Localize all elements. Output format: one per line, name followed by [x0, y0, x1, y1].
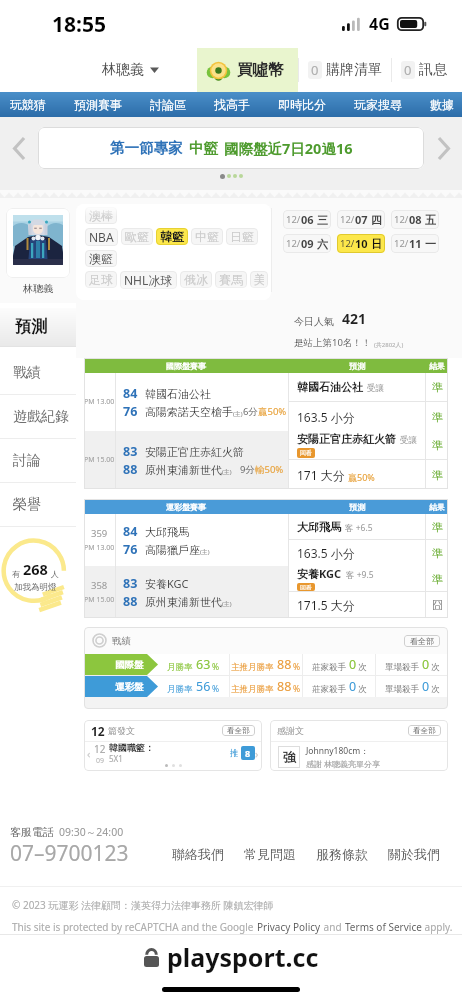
button[interactable]: 美足: [250, 271, 268, 288]
staticText: ›: [255, 746, 259, 761]
staticText: 安養KGC: [297, 566, 342, 581]
staticText: Johnny180cm：: [306, 745, 369, 757]
button[interactable]: Previous: [0, 127, 38, 169]
staticText: 國際盤近7日20過16: [224, 138, 353, 158]
staticText: 關於我們: [388, 846, 440, 862]
button[interactable]: 澳籃: [85, 250, 117, 267]
button[interactable]: 林聰義: [102, 52, 159, 88]
staticText: 找高手: [214, 97, 250, 112]
staticText: 76: [123, 403, 138, 420]
staticText: 12: [91, 723, 105, 739]
button[interactable]: 聯絡我們: [162, 840, 234, 868]
button[interactable]: 戰績: [0, 351, 76, 394]
button[interactable]: [6, 208, 70, 278]
button[interactable]: 澳棒: [85, 207, 117, 224]
staticText: %: [293, 661, 301, 673]
staticText: 準: [432, 468, 443, 482]
staticText: 安陽正官庄赤紅火箭: [297, 432, 396, 446]
button[interactable]: 常見問題: [234, 840, 306, 868]
staticText: 結果: [429, 502, 445, 512]
button[interactable]: 賽馬: [215, 271, 247, 288]
button[interactable]: 遊戲紀錄: [0, 395, 76, 438]
button[interactable]: 0: [299, 48, 391, 92]
staticText: 9分: [240, 463, 255, 476]
button[interactable]: 討論: [0, 439, 76, 482]
staticText: 莊家殺手: [312, 662, 346, 673]
button[interactable]: NHL冰球: [120, 271, 177, 289]
staticText: 268: [23, 559, 48, 579]
button[interactable]: 中籃: [191, 228, 223, 245]
staticText: 88: [123, 593, 138, 610]
staticText: 84: [123, 523, 138, 540]
button[interactable]: 數據: [426, 92, 458, 117]
button[interactable]: 玩家搜尋: [350, 92, 406, 117]
button[interactable]: 12/: [283, 234, 331, 253]
button[interactable]: 關於我們: [378, 840, 450, 868]
staticText: 討論: [13, 452, 41, 470]
staticText: 09: [96, 756, 105, 764]
staticText: 12/: [340, 213, 355, 226]
button[interactable]: 討論區: [146, 92, 190, 117]
button[interactable]: NBA: [85, 228, 118, 246]
button[interactable]: 預測: [0, 308, 76, 346]
button[interactable]: 看全部: [404, 635, 440, 647]
staticText: 囧: [432, 598, 443, 612]
button[interactable]: 12/: [391, 234, 439, 253]
staticText: 莊家殺手: [312, 684, 346, 695]
staticText: 單場殺手: [385, 684, 419, 695]
staticText: 贏50%: [348, 471, 375, 483]
button[interactable]: 找高手: [210, 92, 254, 117]
staticText: 四: [371, 213, 382, 227]
staticText: 原州東浦新世代: [145, 595, 222, 609]
button[interactable]: 預測賽事: [70, 92, 126, 117]
button[interactable]: 即時比分: [274, 92, 330, 117]
staticText: 韓國職籃：: [109, 742, 154, 753]
staticText: 原州東浦新世代: [145, 463, 222, 477]
button[interactable]: 12/: [337, 210, 385, 229]
button[interactable]: 12/: [391, 210, 439, 229]
staticText: 08: [409, 212, 422, 227]
button[interactable]: 玩競猜: [6, 92, 50, 117]
staticText: 56: [196, 678, 211, 695]
staticText: (主): [222, 600, 232, 608]
button[interactable]: playsport.cc: [0, 935, 462, 979]
button[interactable]: 歐籃: [121, 228, 153, 245]
staticText: 回看: [300, 449, 312, 457]
staticText: 準: [432, 410, 443, 424]
button[interactable]: 0: [392, 48, 456, 92]
button[interactable]: Next: [424, 127, 462, 169]
button[interactable]: 足球: [85, 271, 117, 288]
staticText: (主): [200, 548, 210, 556]
button[interactable]: 看全部: [408, 725, 441, 736]
staticText: 07: [355, 212, 368, 227]
button[interactable]: 日籃: [226, 228, 258, 245]
button[interactable]: 12/: [337, 234, 385, 253]
button[interactable]: 服務條款: [306, 840, 378, 868]
staticText: 準: [432, 546, 443, 560]
staticText: 澳籃: [89, 251, 113, 266]
staticText: 推: [230, 748, 239, 759]
staticText: 戰績: [13, 364, 41, 382]
staticText: 月勝率: [167, 662, 193, 673]
button[interactable]: 韓籃: [156, 228, 188, 245]
staticText: 玩競猜: [10, 97, 46, 112]
button[interactable]: 12/: [283, 210, 331, 229]
staticText: 8: [245, 747, 251, 759]
staticText: 18:55: [52, 10, 106, 39]
staticText: %: [212, 661, 220, 673]
button[interactable]: 榮譽: [0, 483, 76, 526]
staticText: 日: [371, 237, 382, 251]
staticText: 主推月勝率: [231, 684, 274, 695]
staticText: 購牌清單: [326, 61, 382, 79]
button[interactable]: 看全部: [222, 725, 255, 736]
staticText: NHL冰球: [124, 272, 173, 288]
staticText: 國際盤賽事: [166, 361, 206, 371]
staticText: 安養KGC: [145, 576, 189, 591]
button[interactable]: 俄冰: [180, 271, 212, 288]
button[interactable]: 買噓幣: [197, 48, 298, 92]
staticText: Privacy Policy: [257, 920, 321, 934]
staticText: 林聰義: [23, 282, 53, 295]
button[interactable]: 第一節專家: [38, 127, 424, 169]
staticText: 第一節專家: [110, 139, 183, 157]
staticText: 美足: [254, 272, 264, 287]
